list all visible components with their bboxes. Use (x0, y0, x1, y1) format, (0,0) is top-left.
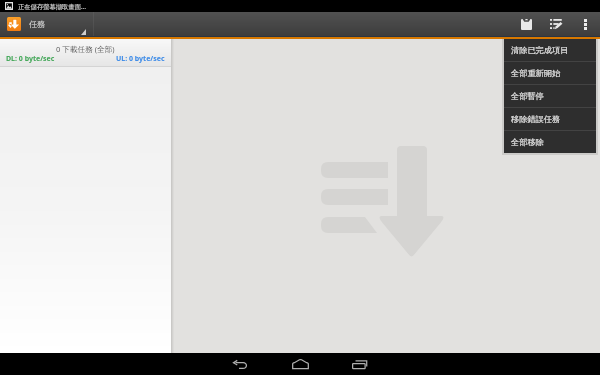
staticText: 任務 (29, 19, 45, 29)
button[interactable]: 全部暫停 (504, 85, 596, 107)
staticText: 全部暫停 (511, 91, 544, 101)
button[interactable]: Clipboard (511, 12, 541, 36)
staticText: 全部移除 (511, 137, 544, 147)
staticText: DL: 0 byte/sec (6, 54, 55, 64)
staticText: 0 下載任務 (全部) (56, 44, 115, 54)
button[interactable]: 清除已完成項目 (504, 39, 596, 61)
staticText: 全部重新開始 (511, 68, 561, 78)
button[interactable]: Recent apps (330, 353, 390, 375)
button[interactable]: 移除錯誤任務 (504, 108, 596, 130)
button[interactable]: 全部重新開始 (504, 62, 596, 84)
staticText: 正在儲存螢幕擷取畫面… (18, 2, 86, 11)
staticText: 清除已完成項目 (511, 45, 569, 55)
button[interactable]: 任務 (0, 12, 93, 36)
staticText: 移除錯誤任務 (511, 114, 561, 124)
button[interactable]: 全部移除 (504, 131, 596, 153)
button[interactable]: Home (270, 353, 330, 375)
button[interactable]: Back (210, 353, 270, 375)
button[interactable]: Edit list (541, 12, 571, 36)
button[interactable]: More options (571, 12, 600, 36)
staticText: UL: 0 byte/sec (116, 54, 165, 64)
